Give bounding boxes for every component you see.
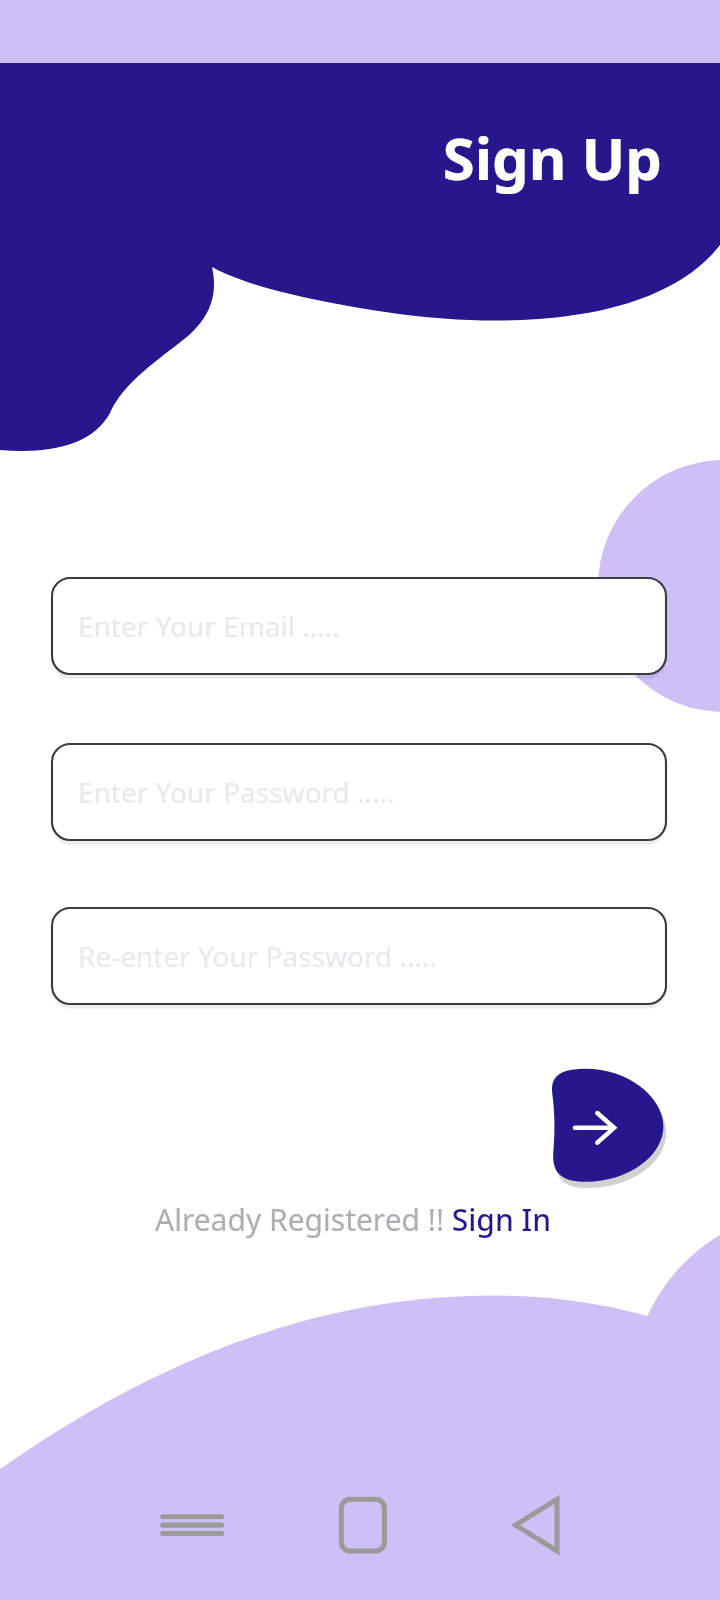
button[interactable]: Already Registered !! Sign In (0, 1199, 706, 1241)
button[interactable]: Submit sign up (546, 1068, 664, 1182)
staticText: Enter Your Email ..... (78, 607, 340, 645)
button[interactable]: Re-enter Your Password ..... (52, 908, 666, 1004)
button[interactable]: Enter Your Password ..... (52, 744, 666, 840)
staticText: Already Registered !! Sign In (0, 1199, 706, 1241)
staticText: Enter Your Password ..... (78, 773, 395, 811)
button[interactable]: Enter Your Email ..... (52, 578, 666, 674)
staticText: Re-enter Your Password ..... (78, 937, 438, 975)
staticText: Sign Up (0, 118, 662, 196)
